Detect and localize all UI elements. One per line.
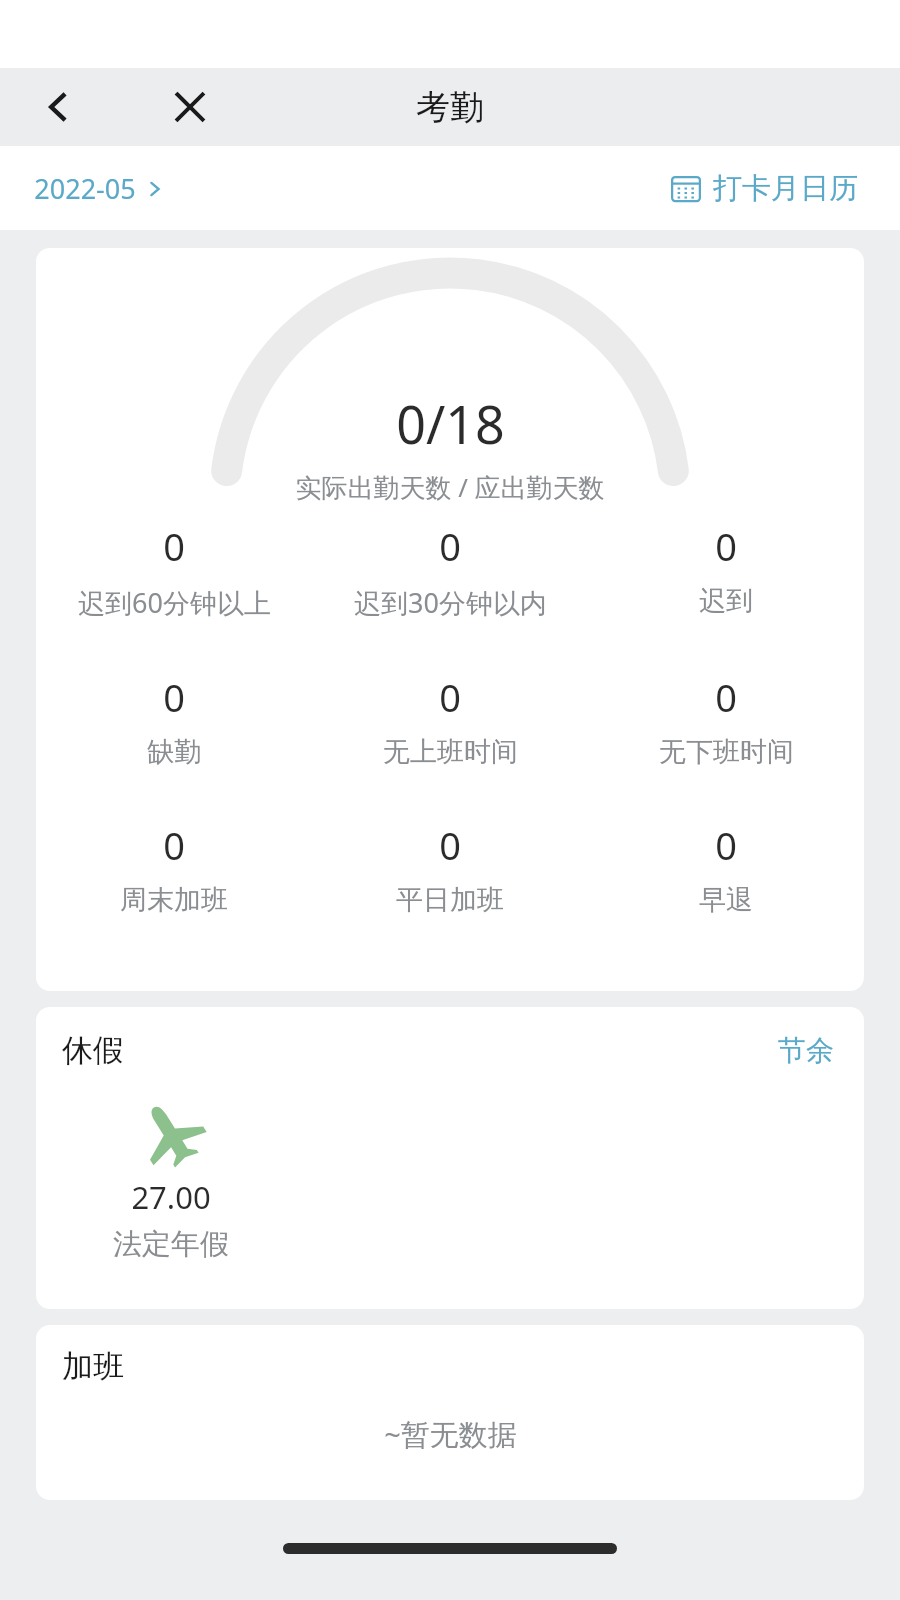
staticText: 迟到30分钟以内 [354, 584, 547, 621]
staticText: 打卡月日历 [713, 170, 858, 207]
button[interactable]: 0 [36, 520, 312, 621]
button[interactable]: 0 [36, 671, 312, 769]
staticText: 迟到60分钟以上 [78, 584, 271, 621]
button[interactable]: 节余 [774, 1029, 838, 1072]
staticText: 0/18 [396, 388, 505, 459]
staticText: 0 [439, 671, 461, 723]
button[interactable]: Close [154, 71, 226, 143]
button[interactable]: 0 [588, 520, 864, 618]
staticText: 考勤 [416, 86, 484, 129]
staticText: 0 [439, 819, 461, 871]
staticText: 法定年假 [113, 1226, 229, 1263]
staticText: 0 [715, 520, 737, 572]
button[interactable]: Back [22, 71, 94, 143]
staticText: 休假 [62, 1031, 124, 1070]
staticText: 早退 [699, 883, 753, 917]
staticText: 0 [163, 671, 185, 723]
staticText: 2022-05 [34, 170, 136, 207]
button[interactable]: 打卡月日历 [665, 162, 864, 215]
button[interactable]: 0 [312, 819, 588, 917]
staticText: ~暂无数据 [384, 1414, 517, 1454]
staticText: 加班 [62, 1347, 124, 1386]
button[interactable]: 0 [312, 520, 588, 621]
staticText: 0 [715, 819, 737, 871]
staticText: 27.00 [131, 1176, 211, 1218]
staticText: 0 [439, 520, 461, 572]
button[interactable]: 0 [588, 819, 864, 917]
staticText: 平日加班 [396, 883, 504, 917]
staticText: 实际出勤天数 / 应出勤天数 [295, 469, 605, 505]
staticText: 迟到 [699, 584, 753, 618]
staticText: 无下班时间 [659, 735, 794, 769]
staticText: 周末加班 [120, 883, 228, 917]
button[interactable]: 0 [588, 671, 864, 769]
button[interactable]: 27.00 [36, 1098, 306, 1263]
button[interactable]: 0 [312, 671, 588, 769]
staticText: 0 [715, 671, 737, 723]
staticText: 0 [163, 520, 185, 572]
button[interactable]: 2022-05 [26, 162, 172, 215]
staticText: 无上班时间 [383, 735, 518, 769]
staticText: 缺勤 [147, 735, 201, 769]
button[interactable]: 0 [36, 819, 312, 917]
staticText: 0 [163, 819, 185, 871]
staticText: 节余 [778, 1033, 834, 1068]
